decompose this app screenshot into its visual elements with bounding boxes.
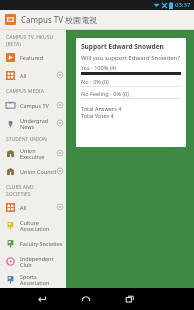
button[interactable]: Union Executive (0, 144, 66, 162)
staticText: Union Executive (20, 147, 57, 160)
staticText: All (20, 72, 57, 79)
button[interactable]: Union Council (0, 162, 66, 180)
button[interactable]: Sports Association (0, 270, 66, 288)
staticText: Total Answers 4 (81, 105, 122, 112)
staticText: Support Edward Snowden (81, 42, 164, 51)
button[interactable]: Back (32, 289, 52, 309)
staticText: Culture Association (20, 219, 63, 232)
staticText: No - 0% (0) (81, 78, 109, 85)
staticText: Campus TV (20, 102, 57, 109)
staticText: 03:37 (175, 1, 191, 9)
staticText: Total Votes 4 (81, 112, 114, 119)
button[interactable]: Independent Club Association (0, 252, 66, 270)
staticText: Union Council (20, 168, 57, 175)
staticText: All (20, 204, 57, 211)
button[interactable]: Recent apps (120, 289, 140, 309)
button[interactable]: Featured (0, 48, 66, 66)
button[interactable]: Undergrad News (0, 114, 66, 132)
staticText: CAMPUS MEDIA (6, 88, 44, 95)
button[interactable]: Faculty Societies (0, 234, 66, 252)
staticText: Independent Club Association (20, 255, 63, 268)
staticText: CLUBS AND SOCIETIES (6, 184, 34, 197)
button[interactable]: Support Edward Snowden (76, 38, 186, 147)
staticText: Sports Association (20, 273, 63, 286)
button[interactable]: All (0, 66, 66, 84)
button[interactable]: All (0, 198, 66, 216)
staticText: Undergrad News (20, 117, 57, 130)
staticText: Featured (20, 54, 63, 61)
button[interactable]: Open navigation drawer (5, 14, 16, 25)
staticText: CAMPUS TV, HKUSU (BETA) (6, 34, 54, 47)
button[interactable]: Culture Association (0, 216, 66, 234)
staticText: Will you support Edward Snowden? (81, 54, 180, 62)
staticText: Yes - 100% (4) (81, 64, 117, 71)
staticText: Faculty Societies (20, 240, 63, 247)
button[interactable]: Campus TV (0, 96, 66, 114)
button[interactable]: Home (76, 289, 96, 309)
staticText: Campus TV 校園電視 (21, 14, 98, 25)
staticText: No Feeling - 0% (0) (81, 90, 129, 97)
staticText: STUDENT UNION (6, 136, 47, 143)
